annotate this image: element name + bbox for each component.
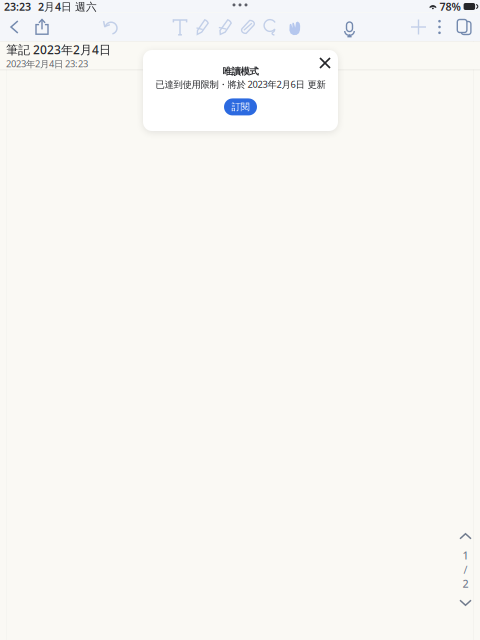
button[interactable]: Highlighter [214, 14, 236, 40]
button[interactable]: Record audio [338, 14, 360, 40]
staticText: 2023年2月4日 23:23 [6, 57, 88, 70]
button[interactable]: Add [407, 14, 429, 40]
button[interactable]: Lasso [259, 14, 281, 40]
button[interactable]: Eraser [237, 14, 259, 40]
staticText: 78% [439, 0, 460, 14]
button[interactable]: Previous page [455, 529, 475, 543]
button[interactable]: Close [315, 53, 335, 73]
button[interactable]: 訂閱 [224, 98, 257, 115]
staticText: 2 [462, 577, 468, 591]
staticText: 唯讀模式 [222, 66, 258, 77]
button[interactable]: More [428, 14, 450, 40]
staticText: 筆記 2023年2月4日 [6, 42, 111, 57]
staticText: / [463, 562, 467, 577]
button[interactable]: Share [31, 14, 53, 40]
button[interactable]: Next page [455, 596, 475, 610]
staticText: 23:23 [4, 0, 31, 14]
button[interactable]: Pen [191, 14, 213, 40]
button[interactable]: Back [3, 14, 25, 40]
button[interactable]: Pages [452, 14, 474, 40]
staticText: 1 [462, 548, 468, 562]
button[interactable]: Shapes [283, 14, 305, 40]
button[interactable]: Undo [100, 14, 122, 40]
staticText: 訂閱 [231, 101, 249, 113]
staticText: 已達到使用限制・將於 2023年2月6日 更新 [155, 78, 325, 90]
staticText: 2月4日 週六 [38, 0, 97, 14]
button[interactable]: Text tool [169, 14, 191, 40]
